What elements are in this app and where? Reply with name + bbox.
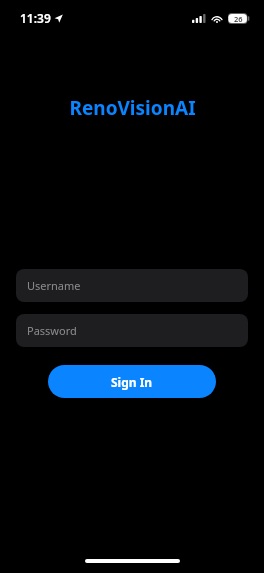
- button[interactable]: Password: [16, 314, 248, 347]
- button[interactable]: Sign In: [48, 365, 216, 398]
- staticText: Sign In: [111, 374, 153, 390]
- staticText: RenoVisionAI: [69, 95, 196, 121]
- staticText: Password: [27, 323, 77, 338]
- staticText: 26: [234, 14, 243, 24]
- staticText: Username: [27, 278, 81, 293]
- button[interactable]: Username: [16, 269, 248, 302]
- staticText: 11:39: [20, 10, 51, 26]
